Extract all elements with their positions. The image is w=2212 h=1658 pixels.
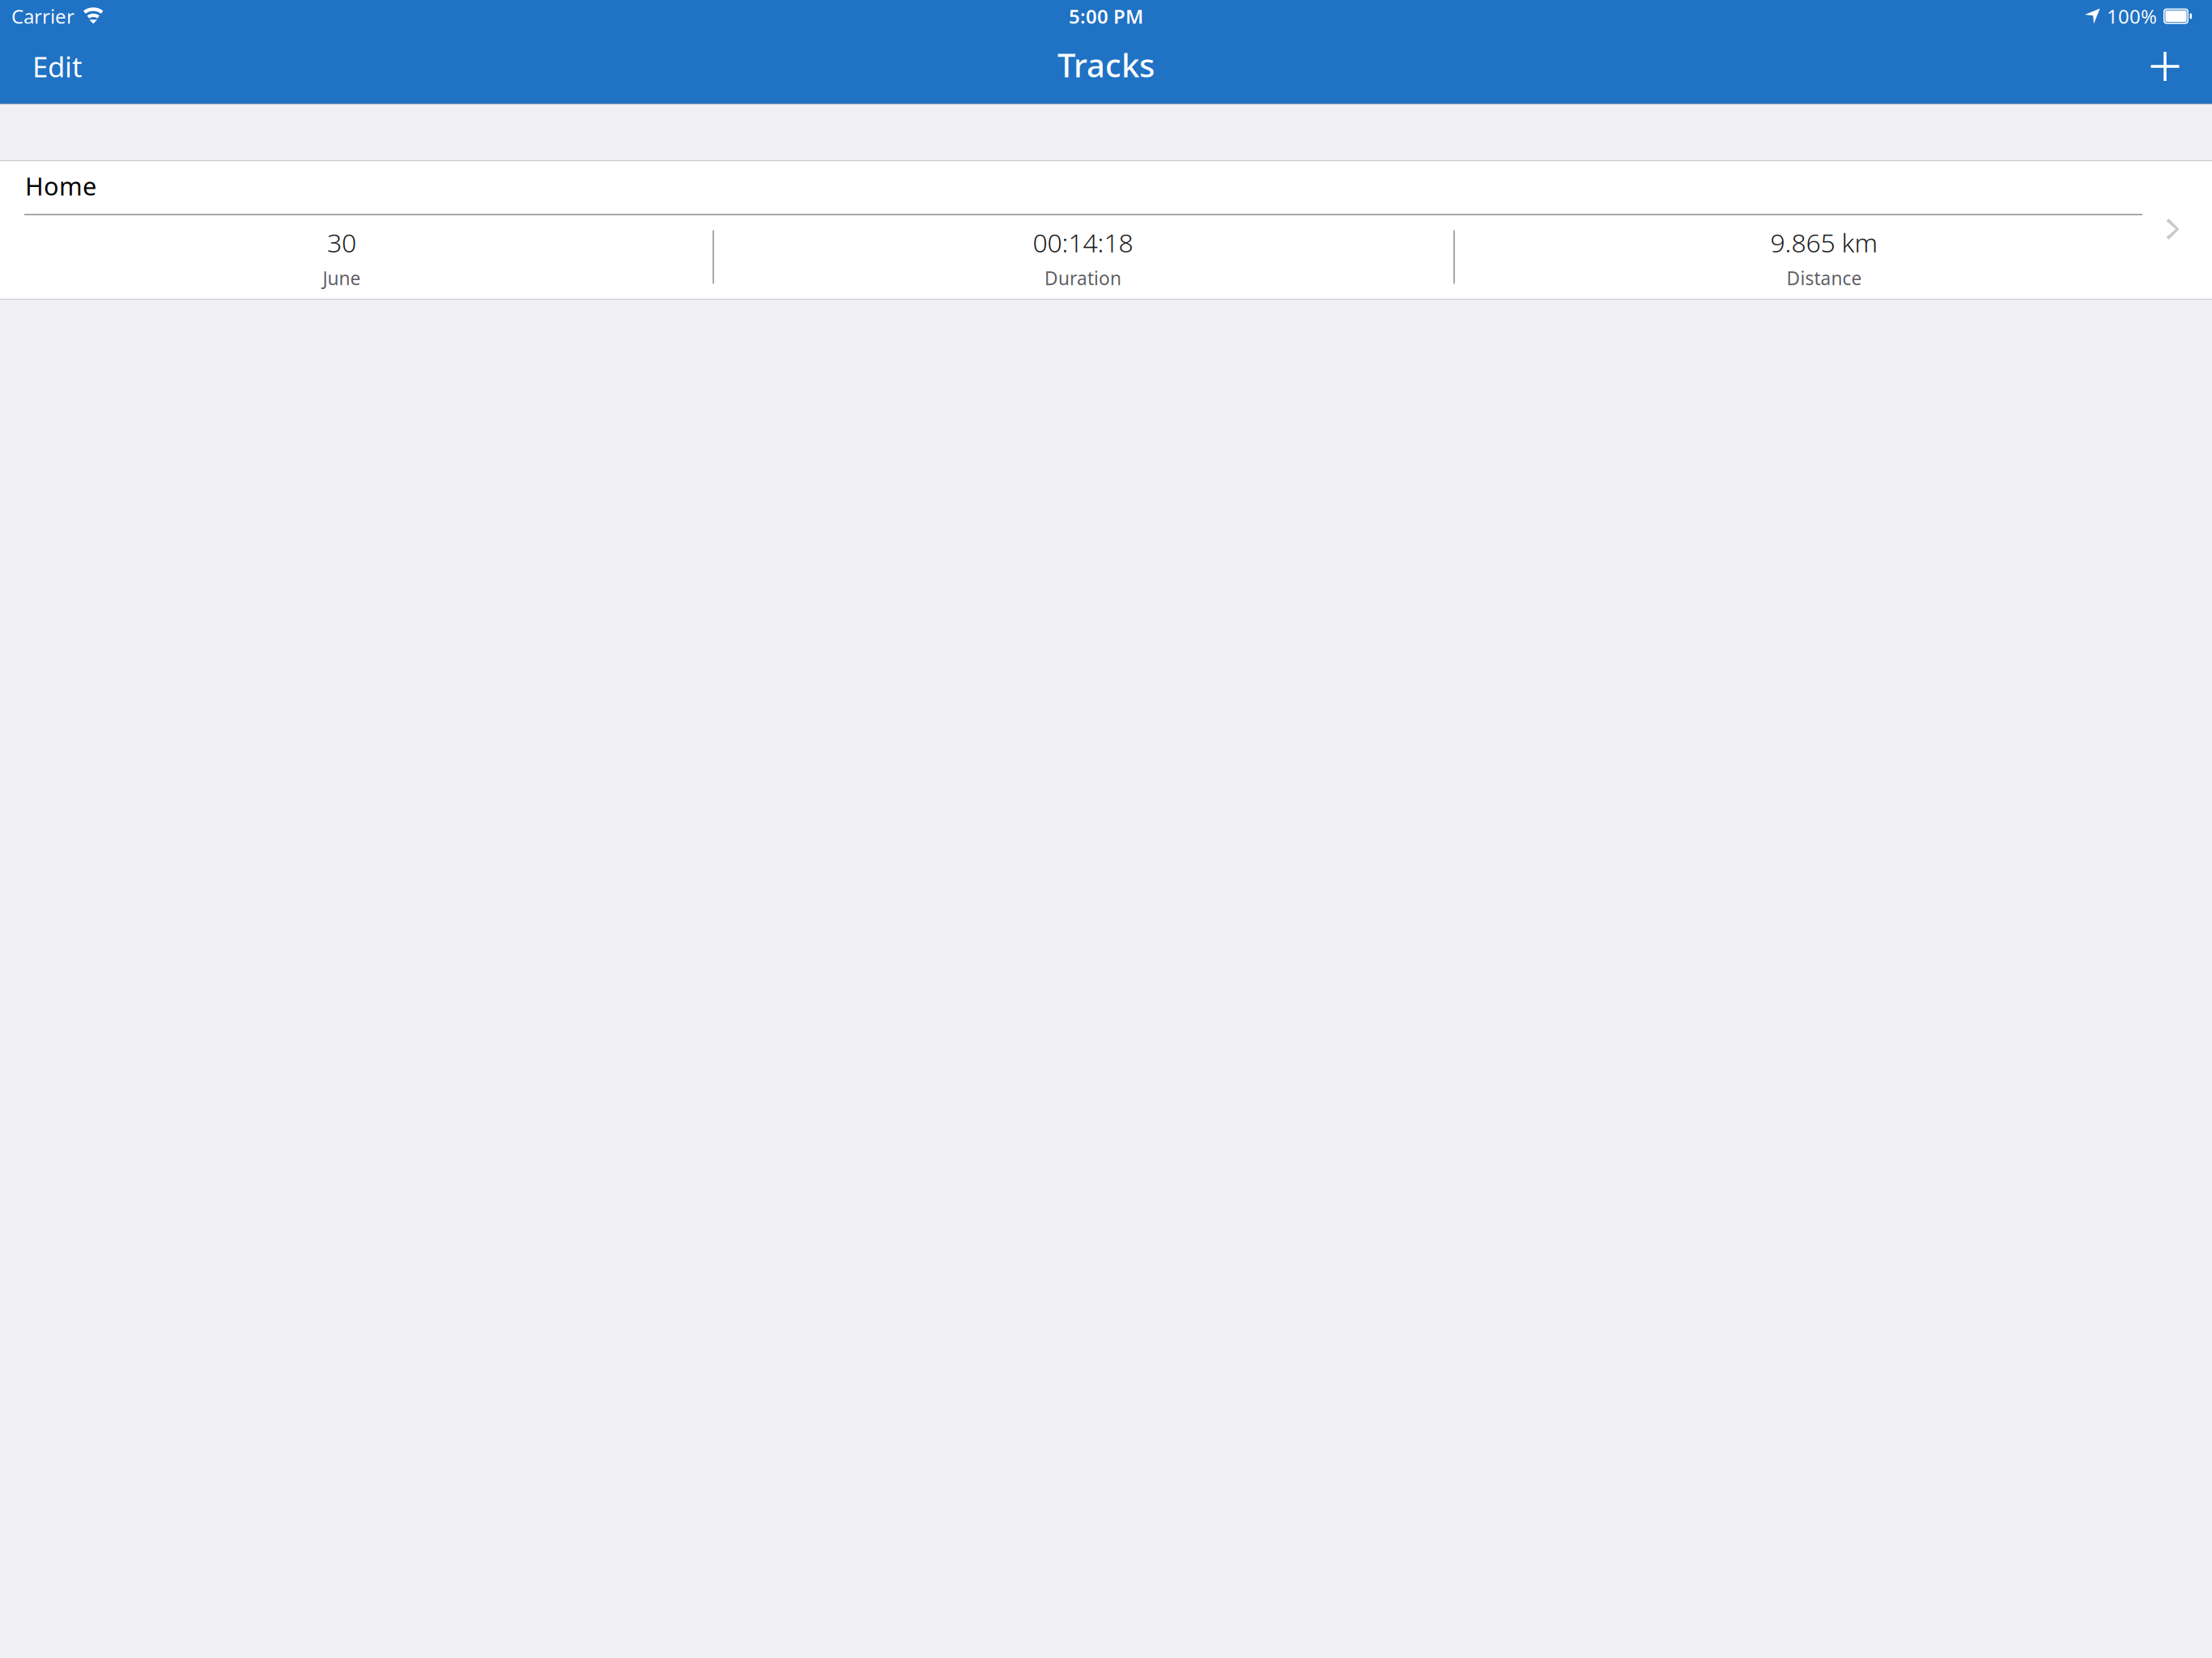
staticText: 30	[327, 225, 356, 259]
staticText: June	[323, 266, 361, 290]
staticText: 00:14:18	[1033, 225, 1133, 259]
button[interactable]: Edit	[25, 38, 90, 98]
button[interactable]: Add track	[2133, 38, 2197, 98]
staticText: Home	[25, 169, 96, 202]
staticText: Carrier	[11, 3, 74, 29]
staticText: Duration	[1044, 266, 1121, 290]
staticText: 9.865 km	[1770, 225, 1878, 259]
staticText: 100%	[2107, 3, 2157, 29]
staticText: Distance	[1787, 266, 1862, 290]
button[interactable]: 30	[0, 215, 2212, 299]
staticText: Tracks	[1057, 43, 1155, 86]
staticText: 5:00 PM	[1069, 3, 1143, 29]
staticText: Edit	[32, 48, 83, 85]
